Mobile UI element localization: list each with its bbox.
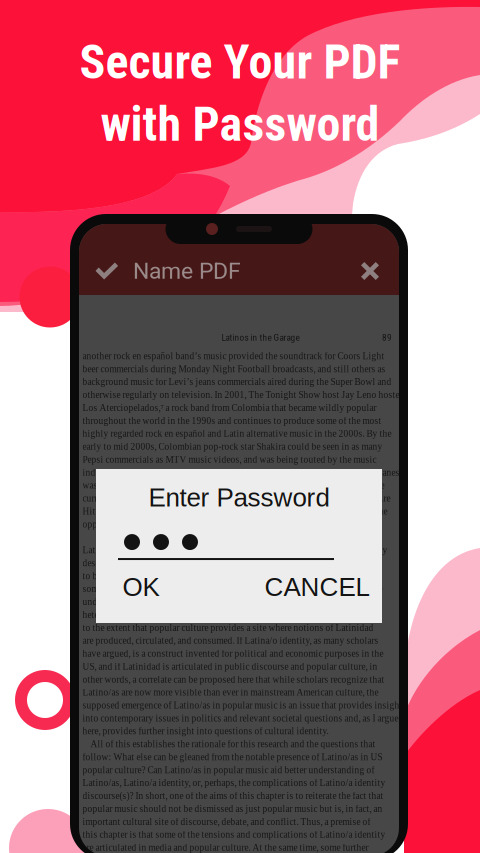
- staticText: are articulated in media and popular cul…: [82, 842, 368, 853]
- staticText: to be expected that more attention will …: [82, 571, 375, 581]
- staticText: another rock en español band’s music pro…: [82, 351, 384, 361]
- staticText: described above; as Latina/os become mor…: [82, 558, 381, 568]
- staticText: otherwise regularly on television. In 20…: [82, 390, 404, 400]
- staticText: OK: [122, 572, 159, 601]
- staticText: to the extent that popular culture provi…: [82, 623, 373, 633]
- staticText: discourse(s)? In short, one of the aims …: [82, 791, 383, 801]
- staticText: follow: What else can be gleaned from th…: [82, 752, 382, 762]
- staticText: highly regarded rock en español and Lati…: [82, 428, 391, 439]
- staticText: are produced, circulated, and consumed. …: [82, 635, 378, 646]
- staticText: beer commercials during Monday Night Foo…: [82, 364, 385, 374]
- staticText: CANCEL: [264, 572, 369, 601]
- staticText: with Password: [100, 96, 379, 152]
- staticText: Latino/as are now more visible than ever…: [82, 687, 378, 697]
- staticText: here, provides further insight into ques…: [82, 726, 328, 736]
- staticText: into contemporary issues in politics and…: [82, 713, 398, 723]
- staticText: Hitting the Mainstream.’ In this way, La…: [82, 506, 387, 516]
- staticText: Pepsi commercials as MTV music videos, a…: [82, 454, 376, 465]
- staticText: some cultural forms are circulated and c…: [82, 584, 382, 594]
- staticText: industry as ‘the next Madonna.’ Most rec…: [82, 467, 399, 478]
- staticText: popular music should not be dismissed as…: [82, 804, 382, 814]
- button[interactable]: Confirm: [83, 247, 131, 295]
- staticText: early to mid 2000s, Colombian pop-rock s…: [82, 441, 382, 452]
- staticText: All of this establishes the rationale fo…: [82, 739, 375, 749]
- staticText: Latinos in the Garage: [221, 332, 299, 343]
- staticText: Secure Your PDF: [79, 34, 400, 90]
- staticText: this chapter is that some of the tension…: [82, 829, 385, 840]
- staticText: understanding of Latina/o identity as a …: [82, 597, 373, 607]
- staticText: heterogeneous formation is essential to …: [82, 610, 378, 620]
- staticText: Enter Password: [148, 483, 329, 512]
- button[interactable]: CANCEL: [264, 570, 370, 604]
- button[interactable]: Close: [346, 247, 394, 295]
- staticText: Los Aterciopelados,⁷ a rock band from Co…: [82, 403, 376, 413]
- staticText: US, and if Latinidad is articulated in p…: [82, 661, 377, 672]
- button[interactable]: OK: [108, 570, 174, 604]
- staticText: popular culture? Can Latino/as in popula…: [82, 765, 374, 775]
- staticText: Latina/o popular culture, then, is emble…: [82, 545, 387, 555]
- staticText: throughout the world in the 1990s and co…: [82, 416, 381, 426]
- staticText: Name PDF: [133, 258, 241, 284]
- staticText: background music for Levi’s jeans commer…: [82, 377, 391, 387]
- staticText: current issue. A 2008 cover story in Bil…: [82, 493, 390, 503]
- staticText: was named by Time magazine as one of the…: [82, 480, 384, 491]
- staticText: Latino/as, Latino/a identity, or, perhap…: [82, 778, 385, 788]
- staticText: opportunity to examine questions of race…: [82, 519, 363, 529]
- staticText: 89: [382, 332, 392, 343]
- staticText: other words, a correlate can be proposed…: [82, 674, 384, 685]
- staticText: have argued, is a construct invented for…: [82, 648, 383, 659]
- staticText: supposed emergence of Latino/as in popul…: [82, 700, 402, 710]
- staticText: important cultural site of discourse, de…: [82, 817, 370, 827]
